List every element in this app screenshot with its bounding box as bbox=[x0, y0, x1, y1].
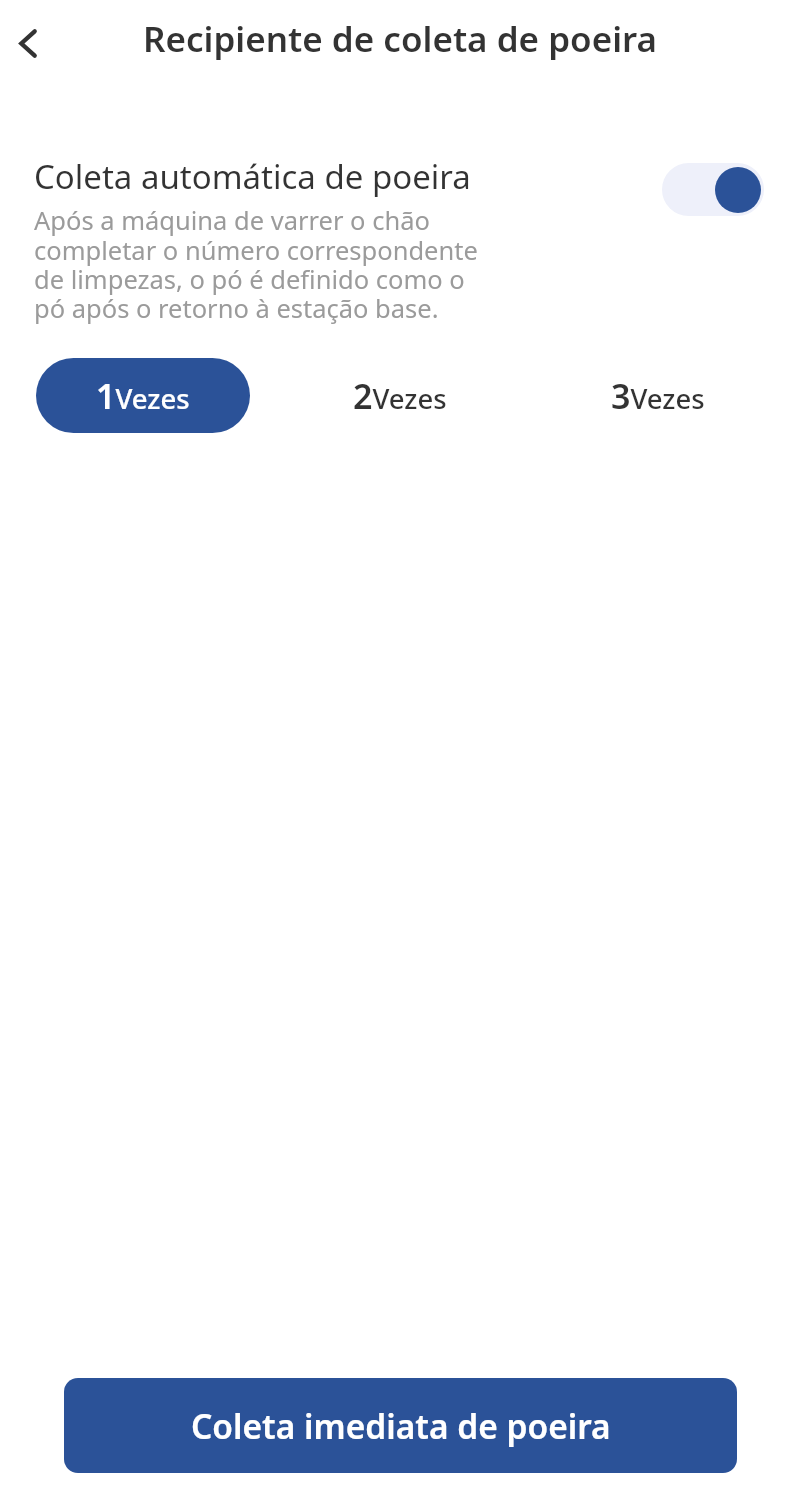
staticText: 2Vezes bbox=[353, 373, 447, 419]
staticText: Após a máquina de varrer o chão completa… bbox=[34, 203, 492, 326]
staticText: Recipiente de coleta de poeira bbox=[143, 15, 658, 63]
staticText: 1Vezes bbox=[96, 373, 190, 419]
button[interactable]: 2Vezes bbox=[293, 358, 507, 433]
button[interactable]: Automatic dust collection, on bbox=[662, 163, 764, 216]
button[interactable]: Coleta imediata de poeira bbox=[64, 1378, 737, 1473]
button[interactable]: 3Vezes bbox=[551, 358, 765, 433]
button[interactable]: Back bbox=[0, 15, 56, 71]
button[interactable]: 1Vezes bbox=[36, 358, 250, 433]
staticText: Coleta automática de poeira bbox=[34, 154, 471, 199]
staticText: Coleta imediata de poeira bbox=[191, 1403, 611, 1449]
staticText: 3Vezes bbox=[611, 373, 705, 419]
